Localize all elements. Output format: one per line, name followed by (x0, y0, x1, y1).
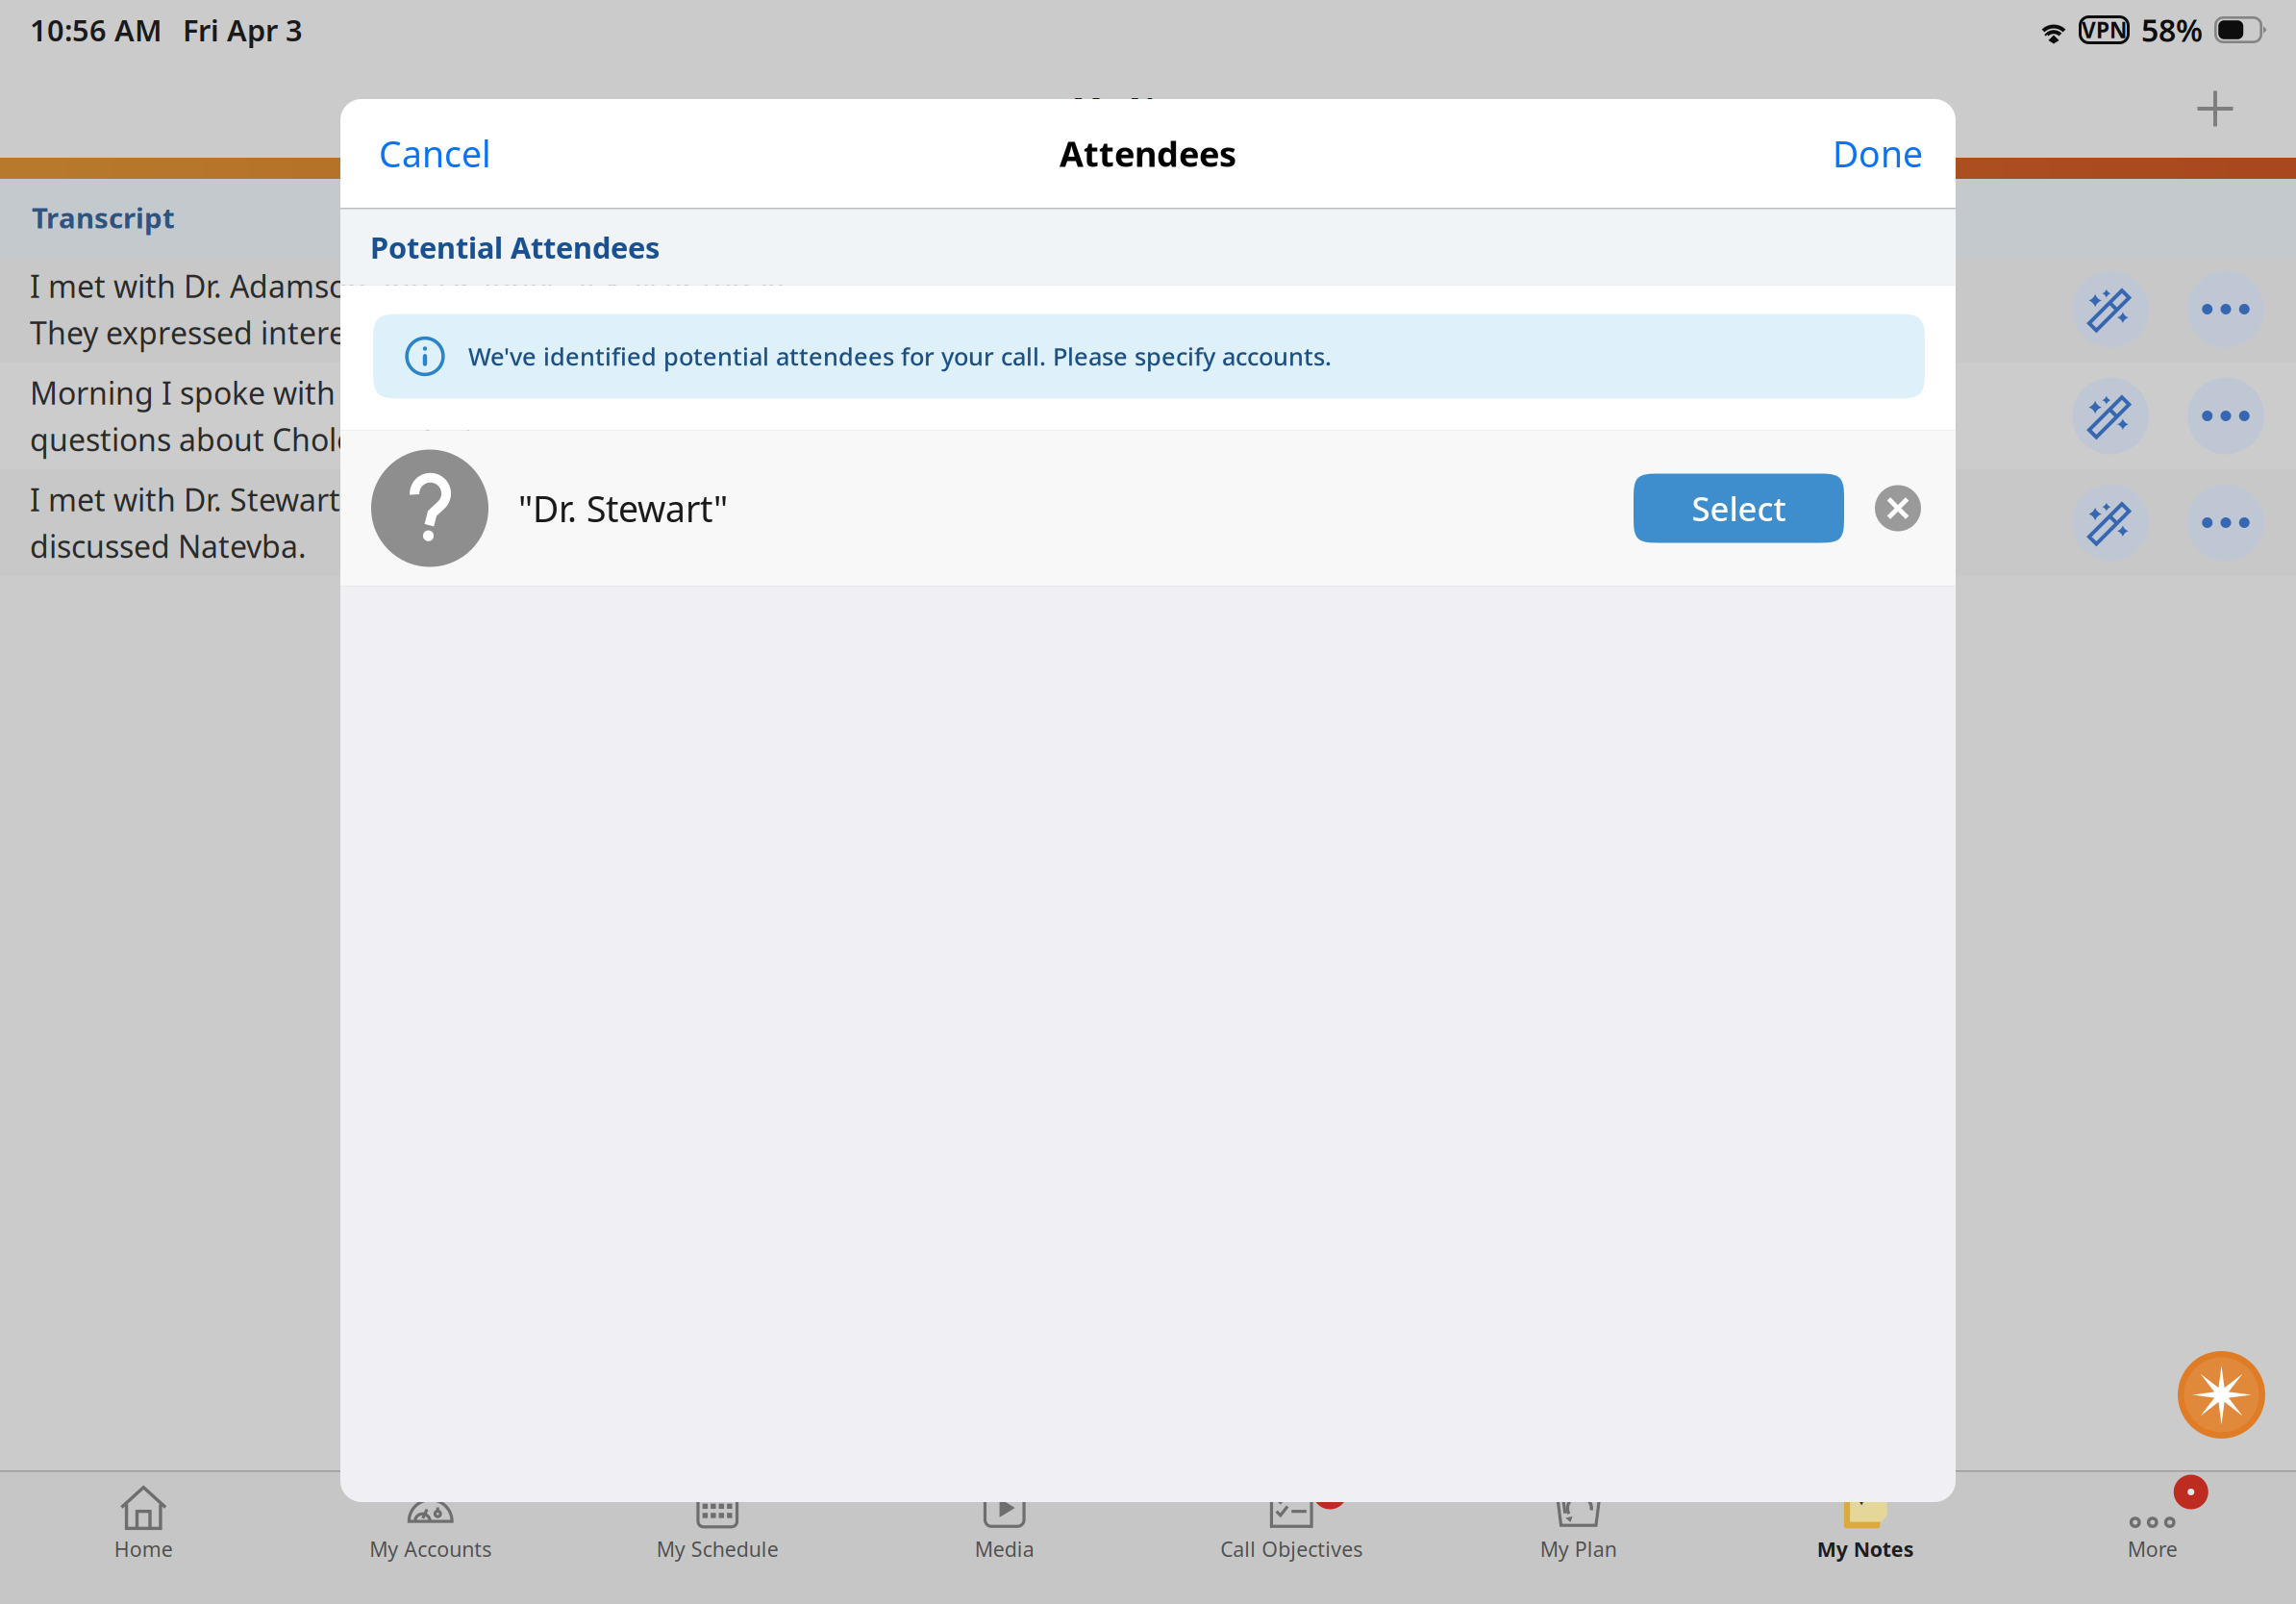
staticText: My Plan (1540, 1535, 1617, 1562)
staticText: Media (975, 1535, 1034, 1562)
button[interactable]: More (2009, 1482, 2296, 1569)
button[interactable]: Summarize (2072, 271, 2149, 348)
staticText: I met with Dr. Adamson and Dr. Jones at … (30, 265, 791, 306)
staticText: Cancel (379, 130, 491, 177)
staticText: Fri Apr 3 (183, 10, 303, 49)
staticText: VPN (2082, 15, 2127, 44)
button[interactable]: Done (1823, 118, 1933, 189)
staticText: "Dr. Stewart" (518, 484, 728, 532)
button[interactable]: Remove Dr. Stewart (1875, 485, 1921, 531)
staticText: I met with Dr. Stewart at Baptist Medica… (30, 479, 774, 520)
staticText: Done (1833, 130, 1923, 177)
button[interactable]: Media (861, 1482, 1148, 1569)
button[interactable]: Select (1634, 474, 1844, 543)
staticText: More (2128, 1535, 2178, 1562)
button[interactable]: Summarize (2072, 377, 2149, 454)
button[interactable]: My Plan (1435, 1482, 1722, 1569)
staticText: My Notes (1817, 1535, 1914, 1562)
staticText: 10:56 AM (30, 10, 162, 49)
button[interactable]: My Notes (1722, 1482, 2009, 1569)
staticText: My Notes (1072, 87, 1224, 130)
staticText: questions about Cholecap dosing. (30, 419, 519, 460)
staticText: 58% (2141, 9, 2203, 50)
button[interactable]: "Dr. Stewart" (371, 450, 728, 567)
button[interactable]: Home (0, 1482, 287, 1569)
staticText: Call Objectives (1220, 1535, 1363, 1562)
staticText: My Schedule (656, 1535, 779, 1562)
button[interactable]: My Schedule (574, 1482, 861, 1569)
staticText: discussed Natevba. (30, 526, 307, 566)
button[interactable]: More options (2187, 484, 2264, 561)
button[interactable]: Cancel (369, 118, 501, 189)
staticText: We've identified potential attendees for… (468, 340, 1332, 372)
button[interactable]: New note (2183, 76, 2248, 141)
staticText: Attendees (1060, 130, 1236, 176)
staticText: Morning I spoke with Dr. Anderson who ha… (30, 372, 770, 413)
button[interactable]: Summarize (2072, 484, 2149, 561)
staticText: Home (114, 1535, 173, 1562)
staticText: Potential Attendees (370, 228, 660, 267)
staticText: Select (1692, 486, 1786, 530)
staticText: Transcript (32, 199, 175, 236)
button[interactable]: My Accounts (287, 1482, 574, 1569)
button[interactable]: AI assistant (2178, 1351, 2265, 1439)
button[interactable]: More options (2187, 377, 2264, 454)
staticText: They expressed interest in Natevba. (30, 312, 543, 353)
button[interactable]: Call Objectives (1148, 1482, 1435, 1569)
button[interactable]: More options (2187, 271, 2264, 348)
staticText: My Accounts (369, 1535, 492, 1562)
